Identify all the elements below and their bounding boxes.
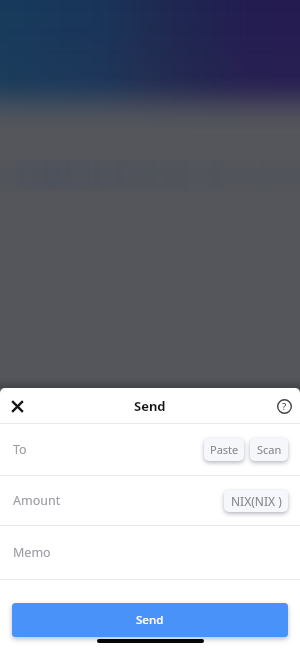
button[interactable]: NIX(NIX ): [224, 490, 288, 512]
button[interactable]: To: [0, 424, 300, 475]
staticText: Memo: [13, 544, 51, 561]
staticText: Scan: [257, 442, 282, 457]
button[interactable]: Paste: [204, 438, 244, 461]
button[interactable]: Send: [12, 603, 288, 637]
staticText: NIX(NIX ): [231, 493, 282, 509]
button[interactable]: Close: [6, 395, 28, 417]
button[interactable]: Memo: [0, 526, 300, 579]
staticText: Send: [136, 612, 164, 628]
button[interactable]: Scan: [250, 438, 288, 461]
staticText: ?: [282, 400, 287, 413]
button[interactable]: Help: [273, 395, 295, 417]
staticText: To: [13, 441, 27, 458]
staticText: Paste: [210, 442, 239, 457]
staticText: Amount: [13, 492, 61, 509]
button[interactable]: Amount: [0, 476, 300, 525]
staticText: Send: [134, 397, 166, 415]
